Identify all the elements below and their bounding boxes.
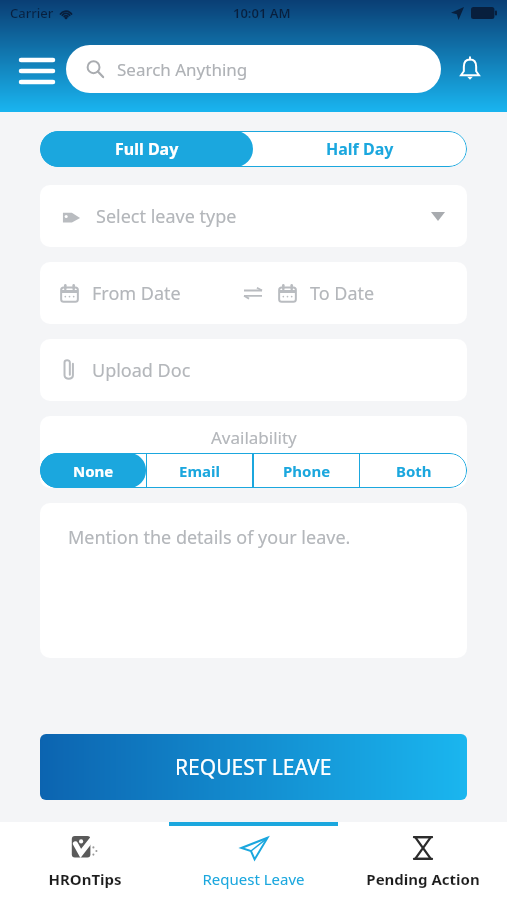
staticText: Carrier (10, 4, 54, 22)
staticText: Half Day (326, 138, 394, 160)
staticText: Upload Doc (92, 358, 191, 383)
button[interactable]: Request Leave (169, 822, 338, 900)
staticText: To Date (310, 281, 375, 306)
staticText: Phone (283, 461, 331, 481)
button[interactable]: Mention the details of your leave. (40, 503, 467, 658)
staticText: None (73, 461, 114, 481)
button[interactable]: Full Day (40, 131, 253, 167)
staticText: Full Day (115, 138, 179, 160)
button[interactable]: Menu (14, 46, 60, 92)
button[interactable]: Notifications (447, 46, 493, 92)
button[interactable]: Email (146, 453, 253, 488)
staticText: Request Leave (202, 869, 305, 889)
staticText: From Date (92, 281, 181, 306)
button[interactable]: Pending Action (338, 822, 507, 900)
staticText: Mention the details of your leave. (68, 525, 351, 550)
staticText: Pending Action (366, 869, 480, 889)
staticText: Email (179, 461, 220, 481)
staticText: Both (396, 461, 432, 481)
button[interactable]: Search Anything (66, 45, 441, 93)
staticText: REQUEST LEAVE (175, 753, 332, 782)
button[interactable]: Half Day (253, 131, 467, 167)
button[interactable]: REQUEST LEAVE (40, 734, 467, 800)
button[interactable]: Phone (253, 453, 360, 488)
button[interactable]: From Date (60, 262, 244, 324)
staticText: 10:01 AM (233, 4, 291, 22)
staticText: Search Anything (117, 58, 248, 81)
staticText: HROnTips (48, 869, 122, 889)
staticText: Select leave type (96, 204, 237, 229)
button[interactable]: Select leave type (40, 185, 467, 247)
button[interactable]: Upload Doc (40, 339, 467, 401)
button[interactable]: To Date (278, 262, 447, 324)
button[interactable]: Both (360, 453, 467, 488)
staticText: Availability (211, 426, 297, 449)
button[interactable]: None (40, 453, 146, 488)
button[interactable]: HROnTips (0, 822, 169, 900)
